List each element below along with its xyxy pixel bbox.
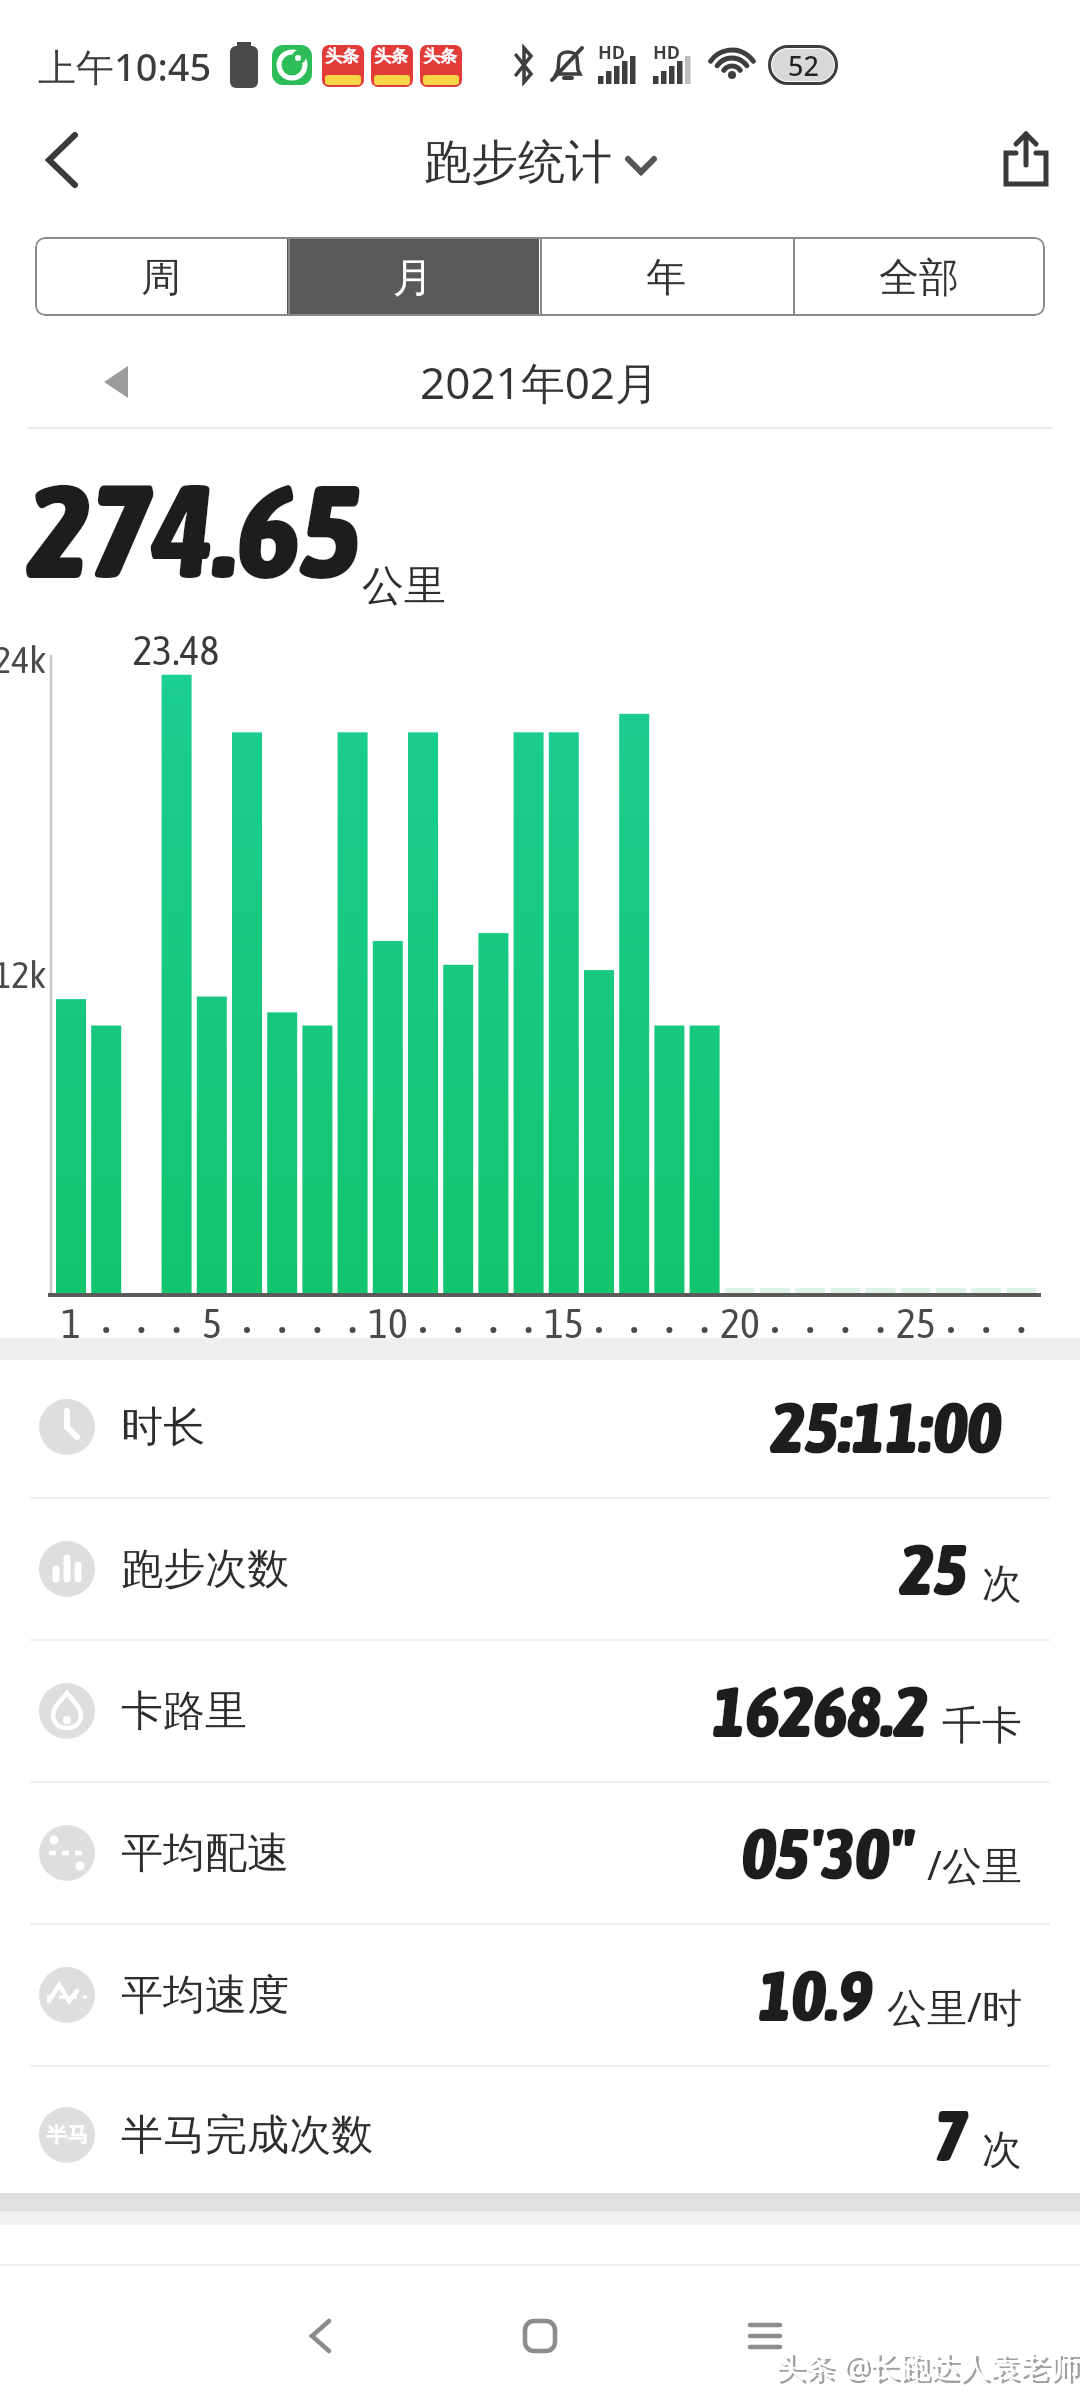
button[interactable]: 跑步次数 (0, 1499, 1080, 1639)
staticText: 平均速度 (121, 1969, 289, 2022)
button[interactable] (500, 2300, 580, 2372)
staticText: 16268.2 (712, 1670, 928, 1753)
staticText: 25:11:00 (771, 1386, 1002, 1469)
staticText: HD (598, 40, 625, 65)
staticText: 274.65 (28, 455, 362, 606)
button[interactable] (28, 118, 98, 202)
button[interactable] (88, 352, 144, 412)
staticText: /公里 (927, 1837, 1022, 1892)
staticText: 头条 @长跑达人袁老师 (775, 2345, 1080, 2386)
button[interactable] (280, 2300, 360, 2372)
staticText: 跑步统计 (424, 133, 612, 192)
button[interactable]: 年 (539, 237, 792, 316)
staticText: 2021年02月 (420, 352, 660, 412)
staticText: 1 (21, 1299, 121, 1347)
staticText: 7 (934, 2094, 968, 2177)
button[interactable]: 卡路里 (0, 1641, 1080, 1781)
staticText: 周 (141, 252, 181, 302)
staticText: 10.9 (758, 1954, 873, 2037)
staticText: 5 (162, 1299, 262, 1347)
staticText: 05'30" (742, 1812, 913, 1895)
staticText: 半马完成次数 (121, 2109, 373, 2162)
staticText: 头条 (325, 46, 359, 67)
staticText: 头条 @长跑达人袁老师 (778, 2348, 1080, 2389)
staticText: 月 (393, 252, 433, 302)
button[interactable] (725, 2300, 805, 2372)
button[interactable]: 周 (35, 237, 287, 316)
staticText: 10 (338, 1299, 438, 1347)
staticText: 头条 (374, 46, 408, 67)
staticText: 25 (900, 1528, 968, 1611)
button[interactable]: 月 (287, 237, 539, 316)
staticText: 12k (0, 953, 46, 997)
staticText: 时长 (121, 1401, 205, 1454)
staticText: 跑步次数 (121, 1543, 289, 1596)
staticText: 卡路里 (121, 1685, 247, 1738)
button[interactable]: 半马 (0, 2067, 1080, 2203)
staticText: 公里/时 (887, 1979, 1022, 2034)
staticText: 千卡 (942, 1700, 1022, 1750)
staticText: 15 (514, 1299, 614, 1347)
staticText: 25 (866, 1299, 966, 1347)
staticText: 23.48 (116, 626, 236, 674)
staticText: 平均配速 (121, 1827, 289, 1880)
staticText: 上午10:45 (38, 40, 212, 92)
staticText: 次 (982, 1558, 1022, 1608)
staticText: 半马 (46, 2122, 88, 2148)
staticText: 全部 (879, 252, 959, 302)
button[interactable]: 跑步统计 (424, 133, 656, 192)
staticText: 20 (690, 1299, 790, 1347)
button[interactable] (988, 118, 1064, 202)
staticText: HD (653, 40, 680, 65)
staticText: 公里 (362, 560, 446, 613)
staticText: 52 (788, 47, 819, 84)
button[interactable]: 平均速度 (0, 1925, 1080, 2065)
staticText: 次 (982, 2124, 1022, 2174)
button[interactable]: 全部 (792, 237, 1045, 316)
button[interactable]: 时长 (0, 1357, 1080, 1497)
button[interactable]: 平均配速 (0, 1783, 1080, 1923)
staticText: 头条 (423, 46, 457, 67)
staticText: 24k (0, 638, 46, 682)
staticText: 年 (646, 252, 686, 302)
